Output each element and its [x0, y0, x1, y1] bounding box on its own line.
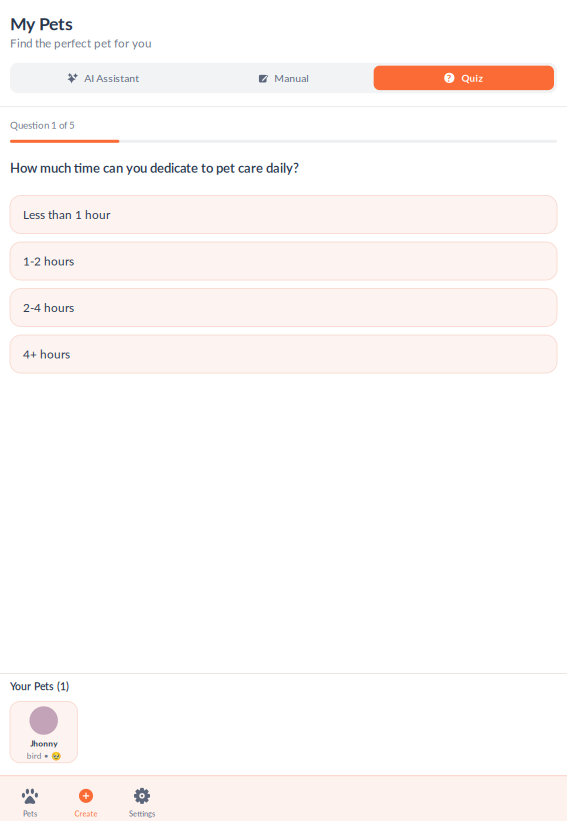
button[interactable]: Jhonny: [10, 701, 77, 763]
staticText: bird • 🥹: [27, 751, 61, 761]
staticText: My Pets: [10, 13, 73, 34]
staticText: AI Assistant: [84, 72, 139, 84]
staticText: Manual: [274, 72, 308, 84]
button[interactable]: Pets: [2, 773, 58, 821]
button[interactable]: ?: [374, 66, 554, 90]
button[interactable]: Less than 1 hour: [10, 195, 557, 233]
button[interactable]: 4+ hours: [10, 335, 557, 373]
staticText: Less than 1 hour: [23, 207, 110, 222]
staticText: 4+ hours: [23, 347, 70, 361]
button[interactable]: 1-2 hours: [10, 242, 557, 280]
staticText: Find the perfect pet for you: [10, 36, 151, 50]
staticText: Your Pets (1): [10, 680, 69, 692]
button[interactable]: Create: [58, 773, 114, 821]
button[interactable]: Manual: [193, 66, 374, 90]
staticText: Pets: [23, 809, 37, 818]
staticText: Create: [74, 809, 97, 818]
staticText: How much time can you dedicate to pet ca…: [10, 160, 299, 175]
staticText: Quiz: [461, 72, 483, 84]
button[interactable]: Settings: [114, 773, 170, 821]
staticText: 1-2 hours: [23, 254, 74, 268]
staticText: Settings: [129, 809, 155, 818]
button[interactable]: 2-4 hours: [10, 288, 557, 326]
staticText: 2-4 hours: [23, 300, 74, 315]
button[interactable]: AI Assistant: [13, 66, 193, 90]
staticText: Question 1 of 5: [10, 119, 75, 131]
staticText: Jhonny: [30, 738, 57, 748]
staticText: ?: [447, 72, 452, 84]
